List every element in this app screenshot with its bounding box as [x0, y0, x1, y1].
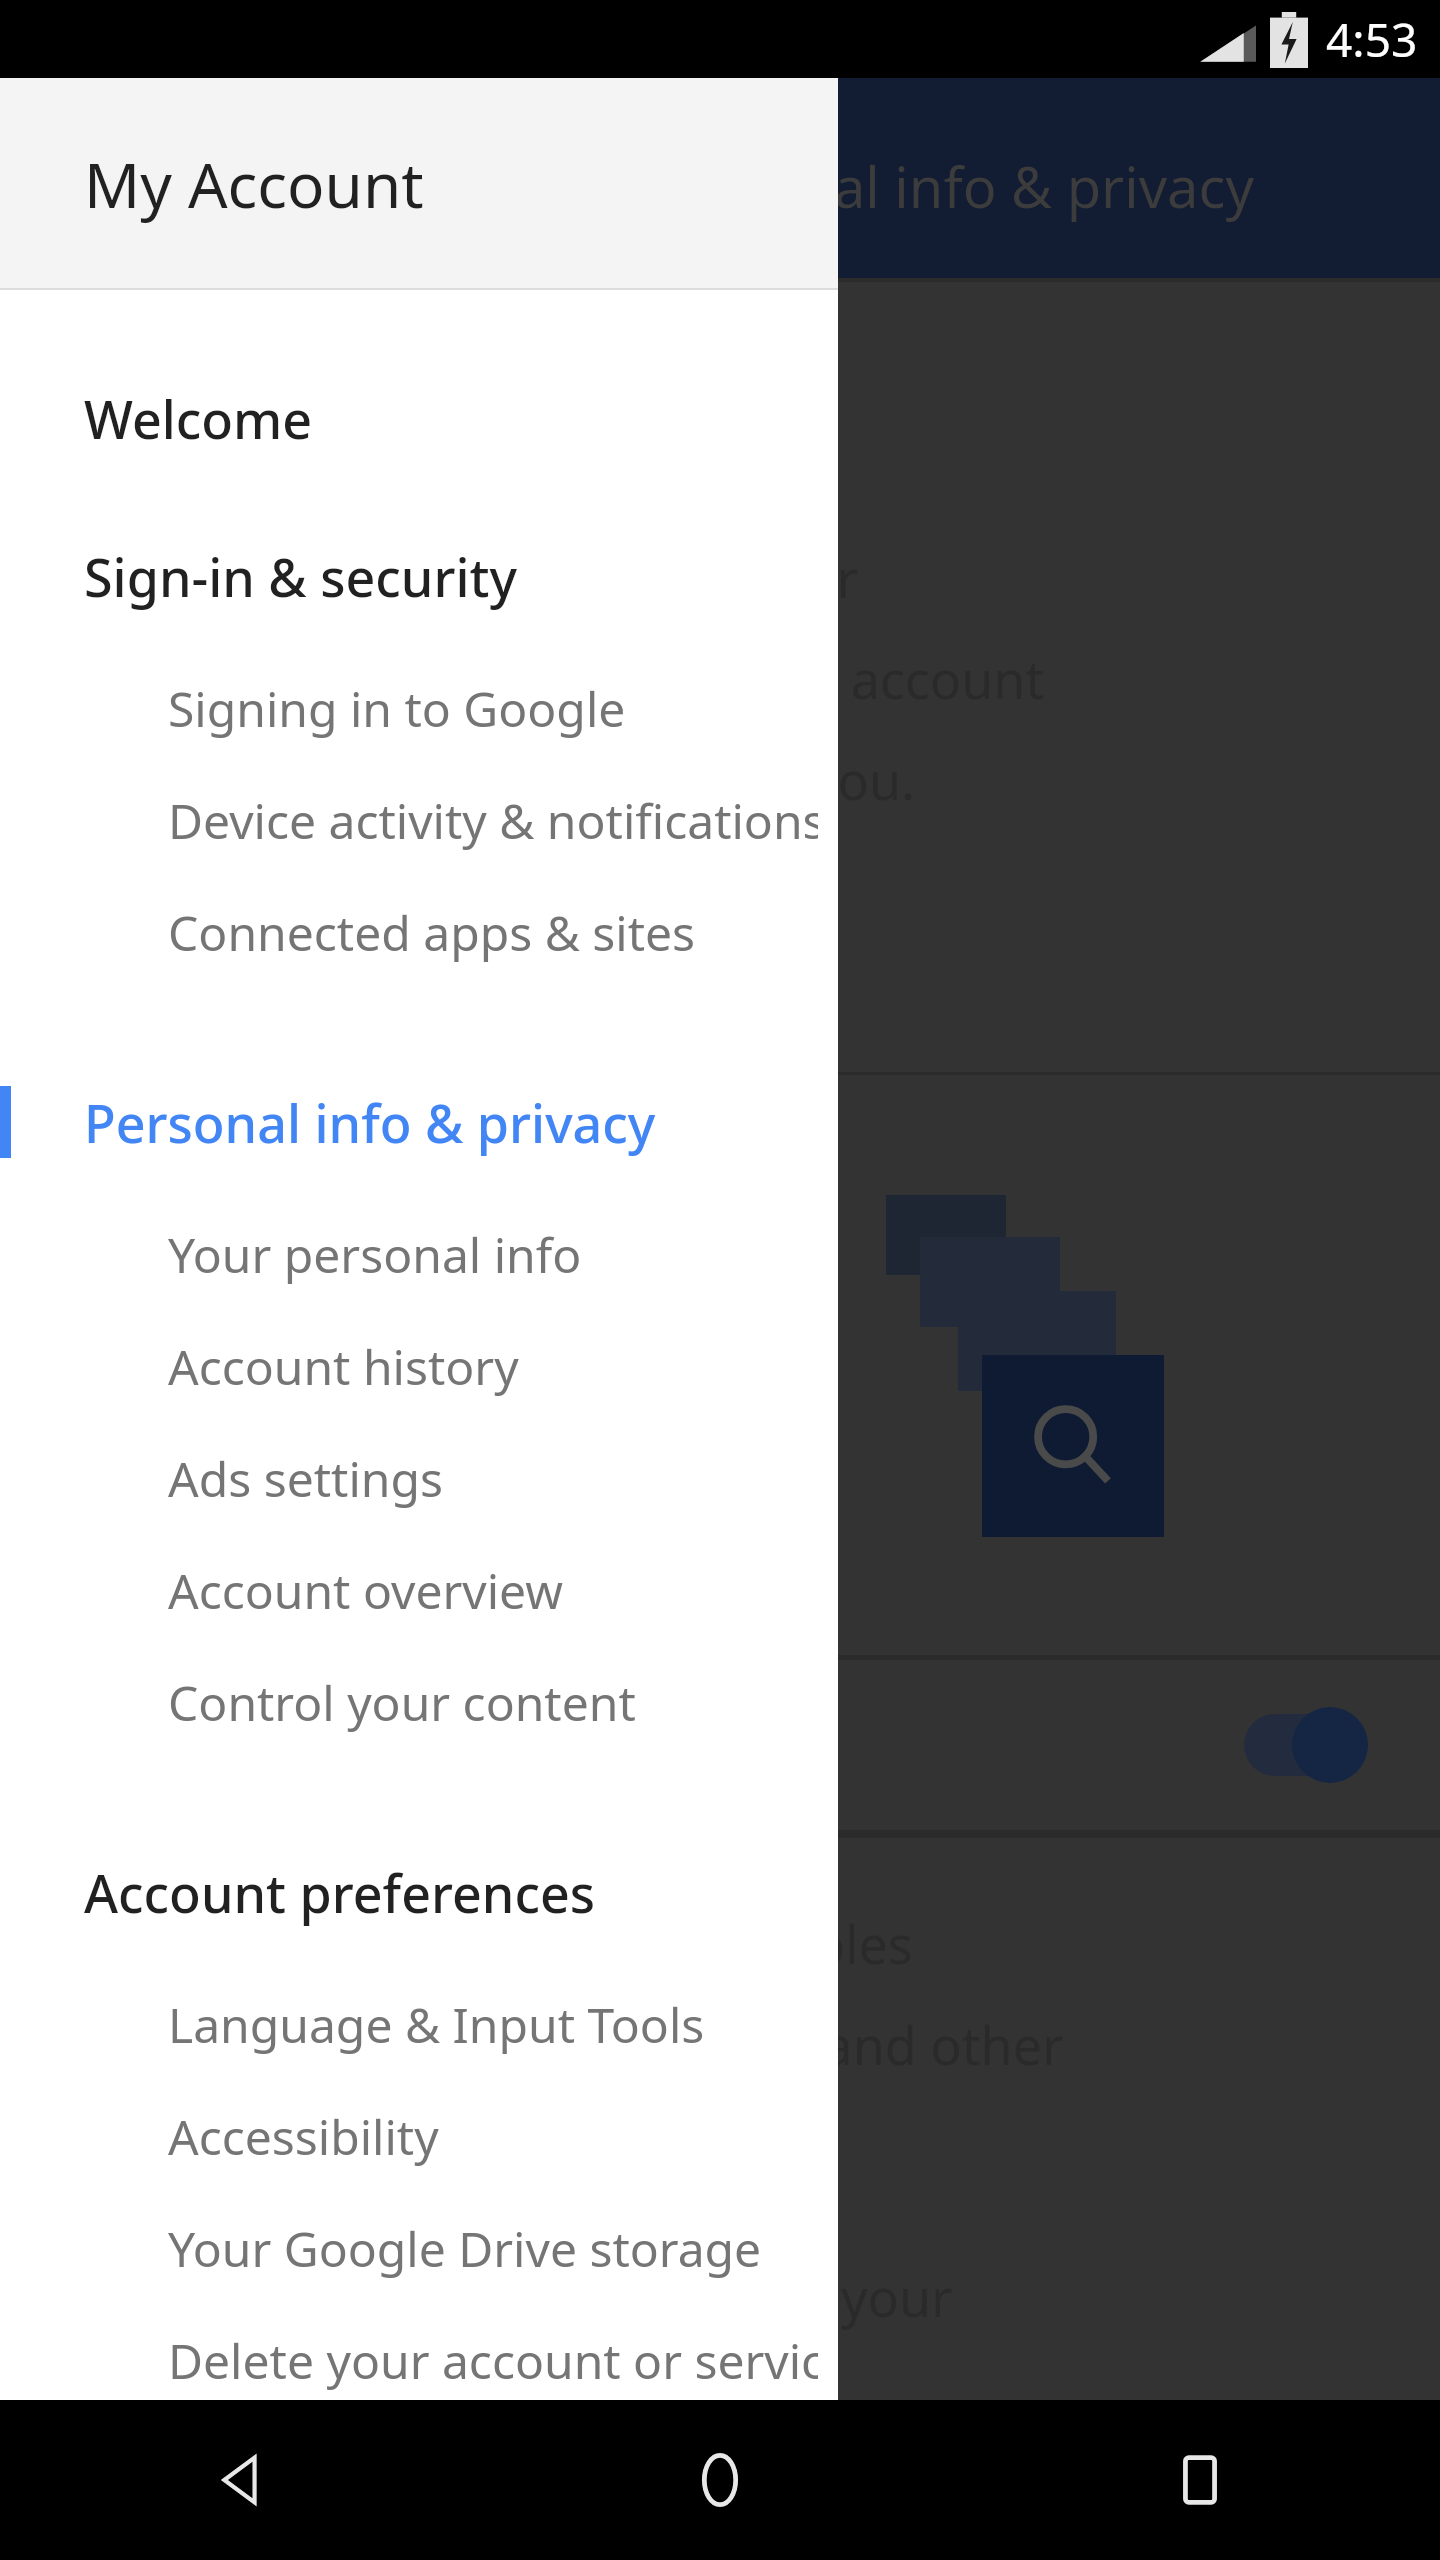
staticText: Control your content [168, 1670, 636, 1735]
staticText: Accessibility [168, 2104, 439, 2169]
staticText: Delete your account or services [168, 2328, 818, 2393]
button[interactable]: Personal info & privacy [0, 1074, 838, 1170]
staticText: Personal info & privacy [84, 1087, 656, 1158]
button[interactable]: Account preferences [0, 1844, 838, 1940]
button[interactable]: Account overview [0, 1534, 838, 1646]
staticText: Language & Input Tools [168, 1992, 705, 2057]
button[interactable]: Connected apps & sites [0, 876, 838, 988]
button[interactable]: Accessibility [0, 2080, 838, 2192]
button[interactable]: Delete your account or services [0, 2304, 838, 2416]
staticText: Google products. [60, 2110, 480, 2181]
staticText: data to make it more useful to you. [60, 744, 915, 815]
staticText: Personal info & privacy [650, 148, 1254, 224]
button[interactable]: Signing in to Google [0, 652, 838, 764]
button[interactable]: Back [0, 2400, 480, 2560]
staticText: My Account [84, 142, 424, 226]
staticText: Account overview [168, 1558, 563, 1623]
button[interactable]: Control your content [0, 1646, 838, 1758]
staticText: Everything from Maps to quicker [60, 542, 859, 613]
staticText: Saves activity and other apps in your [60, 2261, 953, 2332]
button[interactable]: Device activity & notifications [0, 764, 838, 876]
staticText: Makes searches faster and enables [60, 1908, 913, 1979]
staticText: Device activity & notifications [168, 788, 818, 853]
staticText: 4:53 [1326, 8, 1418, 71]
button[interactable]: Welcome [0, 370, 838, 466]
staticText: Ads settings [168, 1446, 443, 1511]
button[interactable]: Language & Input Tools [0, 1968, 838, 2080]
staticText: Connected apps & sites [168, 900, 696, 965]
staticText: Signing in to Google [168, 676, 626, 741]
staticText: Start by managing this data and [60, 845, 843, 916]
staticText: Your Google Drive storage [168, 2216, 762, 2281]
button[interactable]: Account history [0, 1310, 838, 1422]
staticText: Account preferences [84, 1857, 596, 1928]
button[interactable]: Sign-in & security [0, 528, 838, 624]
button[interactable]: Recent apps [960, 2400, 1440, 2560]
staticText: features in Search, Maps, Now, and other [60, 2009, 1064, 2080]
staticText: Sign-in & security [84, 541, 517, 612]
staticText: checkout, we improve with your account [60, 643, 1045, 714]
staticText: Web & App Activity [60, 1708, 538, 1782]
button[interactable]: Home [480, 2400, 960, 2560]
button[interactable]: Your Google Drive storage [0, 2192, 838, 2304]
staticText: Welcome [84, 383, 313, 454]
staticText: Account history [168, 1334, 519, 1399]
button[interactable]: Your personal info [0, 1198, 838, 1310]
button[interactable]: Ads settings [0, 1422, 838, 1534]
staticText: Your personal info [168, 1222, 582, 1287]
